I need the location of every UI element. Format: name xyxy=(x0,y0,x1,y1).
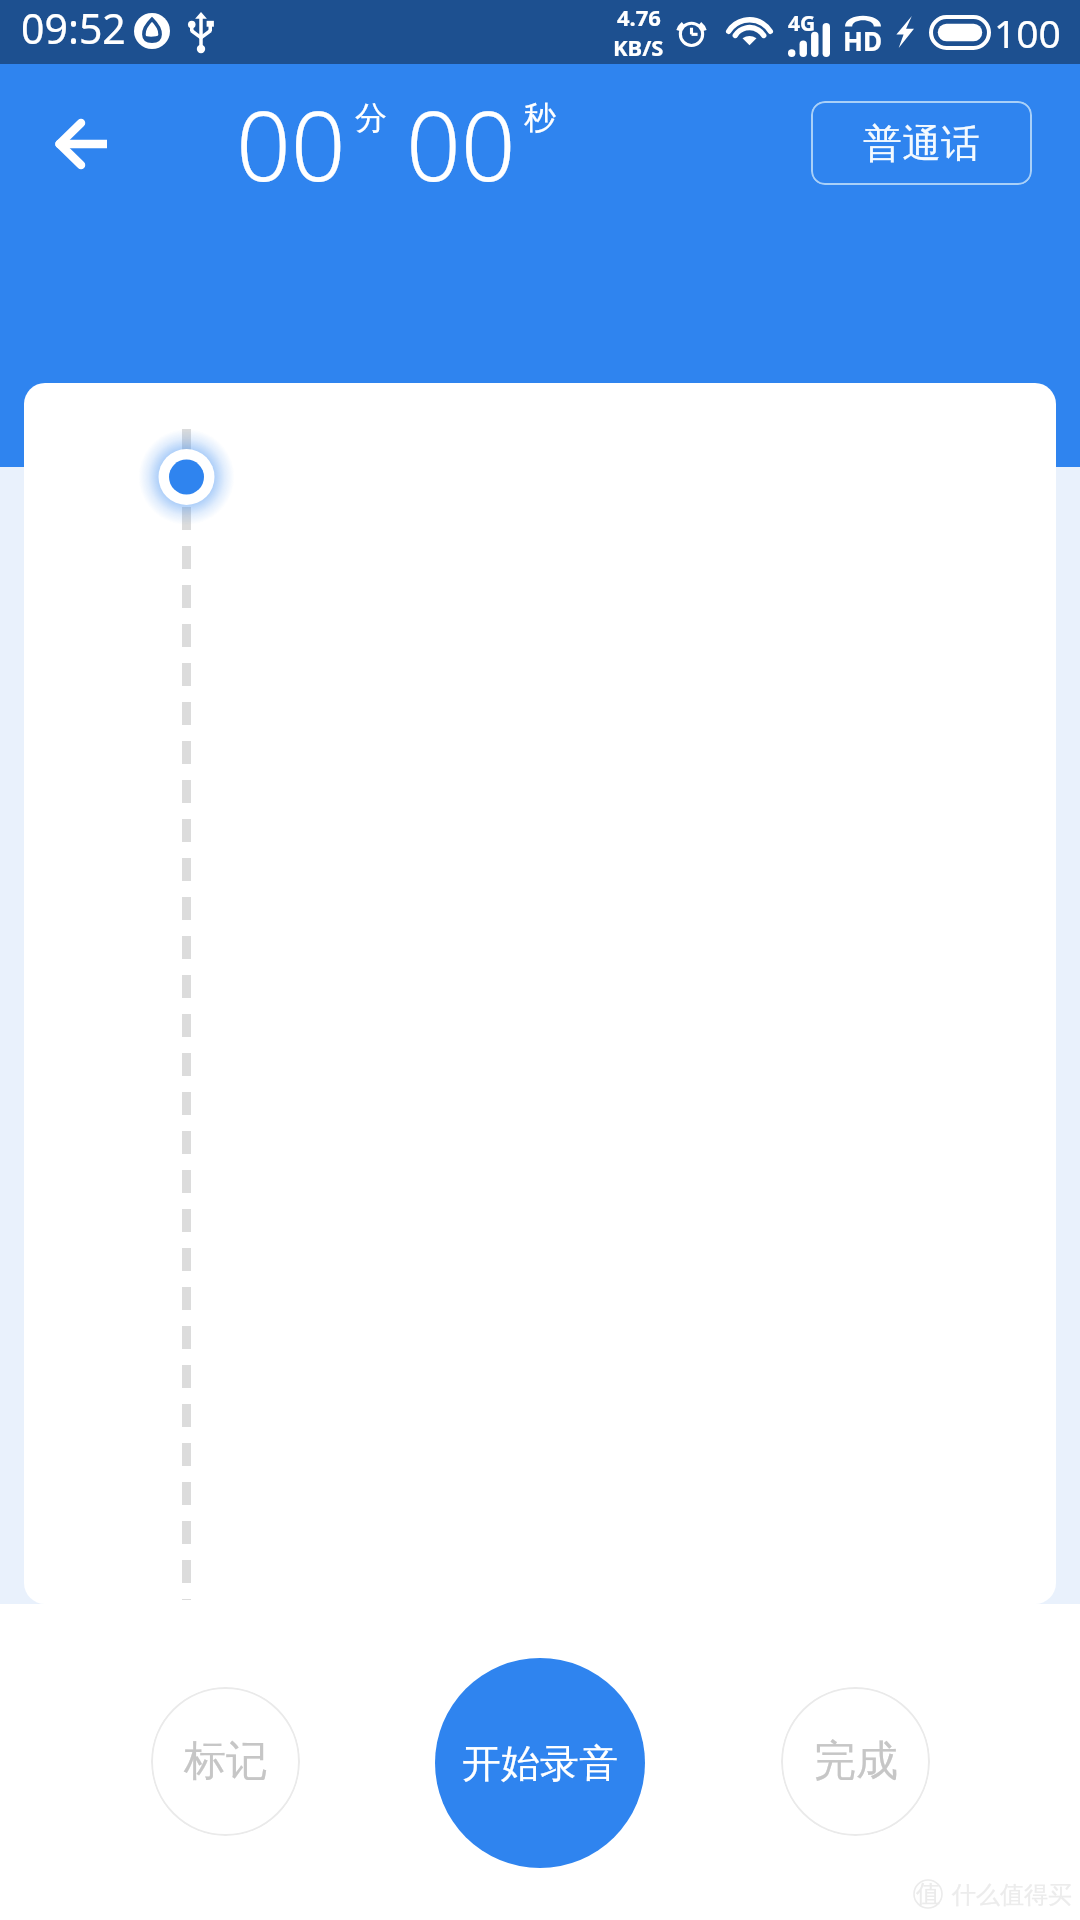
staticText: 00 xyxy=(236,78,346,209)
staticText: 标记 xyxy=(184,1735,268,1788)
staticText: HD xyxy=(843,23,882,58)
button[interactable]: 标记 xyxy=(151,1687,300,1836)
staticText: 完成 xyxy=(814,1735,898,1788)
button[interactable]: Back xyxy=(30,100,130,190)
staticText: 秒 xyxy=(524,98,556,138)
button[interactable]: 开始录音 xyxy=(435,1658,645,1868)
staticText: 4G xyxy=(788,9,816,38)
staticText: 00 xyxy=(406,78,516,209)
staticText: 100 xyxy=(994,6,1061,59)
staticText: 开始录音 xyxy=(462,1739,618,1788)
staticText: 09:52 xyxy=(21,0,126,56)
staticText: 4.76 xyxy=(617,2,661,32)
staticText: 分 xyxy=(355,98,387,138)
staticText: 什么值得买 xyxy=(952,1880,1072,1910)
button[interactable]: 普通话 xyxy=(811,101,1032,185)
staticText: 值 xyxy=(916,1879,940,1909)
staticText: KB/S xyxy=(613,32,664,62)
staticText: 普通话 xyxy=(863,119,980,168)
button[interactable]: 完成 xyxy=(781,1687,930,1836)
